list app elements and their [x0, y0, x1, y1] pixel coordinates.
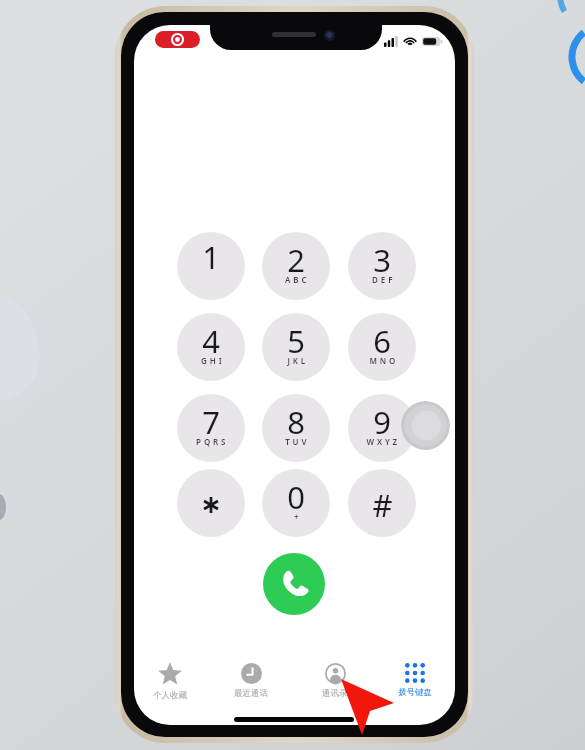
staticText: P Q R S — [196, 436, 226, 447]
staticText: + — [294, 511, 299, 522]
button[interactable]: 5 — [262, 313, 330, 381]
staticText: 9 — [373, 401, 391, 443]
staticText: 1 — [202, 236, 220, 278]
staticText: 6 — [373, 320, 391, 362]
staticText: 8 — [287, 401, 305, 443]
button[interactable]: # — [348, 469, 416, 537]
button[interactable]: 8 — [262, 394, 330, 462]
staticText: G H I — [201, 355, 222, 366]
staticText: 7 — [202, 401, 220, 443]
button[interactable]: AssistiveTouch — [401, 401, 450, 450]
staticText: 最近通话 — [234, 688, 268, 699]
staticText: 2 — [287, 239, 305, 281]
staticText: W X Y Z — [366, 436, 398, 447]
button[interactable]: 3 — [348, 232, 416, 300]
staticText: 通讯录 — [322, 688, 348, 699]
staticText: 拨号键盘 — [398, 687, 432, 698]
button[interactable]: 6 — [348, 313, 416, 381]
staticText: 5 — [287, 320, 305, 362]
button[interactable]: 1 — [177, 232, 245, 300]
button[interactable] — [177, 469, 245, 537]
button[interactable]: 拨号键盘 — [375, 658, 455, 704]
button[interactable]: 0 — [262, 469, 330, 537]
staticText: 4 — [202, 320, 220, 362]
staticText: D E F — [372, 274, 393, 285]
button[interactable]: Call — [263, 553, 325, 615]
button[interactable]: 9 — [348, 394, 416, 462]
staticText: 0 — [287, 476, 305, 518]
staticText: J K L — [287, 355, 306, 366]
staticText: M N O — [369, 355, 396, 366]
staticText: T U V — [285, 436, 307, 447]
button[interactable]: Recording — [155, 31, 200, 48]
button[interactable]: 最近通话 — [211, 658, 291, 704]
staticText: 3 — [373, 239, 391, 281]
staticText: 个人收藏 — [153, 690, 187, 701]
button[interactable]: 4 — [177, 313, 245, 381]
button[interactable]: 个人收藏 — [134, 658, 210, 704]
button[interactable]: 通讯录 — [295, 658, 375, 704]
button[interactable]: 7 — [177, 394, 245, 462]
staticText: # — [372, 484, 393, 526]
staticText: A B C — [285, 274, 307, 285]
button[interactable]: 2 — [262, 232, 330, 300]
